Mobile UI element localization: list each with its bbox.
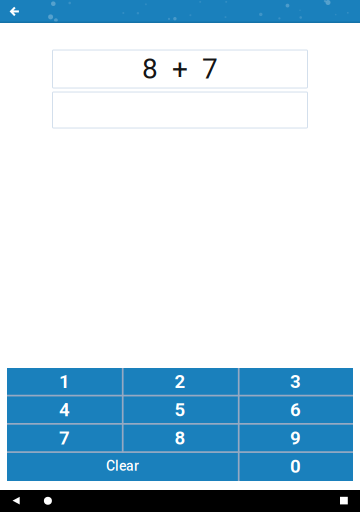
button[interactable]: 2 [122, 368, 238, 396]
staticText: 1 [59, 371, 70, 393]
staticText: 6 [290, 399, 301, 421]
staticText: 8 + 7 [142, 53, 218, 85]
staticText: 5 [174, 399, 185, 421]
staticText: 7 [59, 427, 70, 449]
button[interactable]: 3 [238, 368, 353, 396]
button[interactable]: 5 [122, 396, 238, 424]
staticText: 0 [290, 455, 301, 477]
staticText: 2 [174, 371, 185, 393]
button[interactable]: 1 [7, 368, 122, 396]
staticText: Clear [106, 458, 139, 474]
button[interactable]: Home [36, 490, 72, 512]
button[interactable]: 8 [122, 424, 238, 453]
staticText: 9 [290, 427, 301, 449]
button[interactable]: Back [0, 0, 32, 23]
button[interactable]: 0 [238, 453, 353, 481]
button[interactable]: 4 [7, 396, 122, 424]
button[interactable]: Back [0, 490, 36, 512]
staticText: 4 [59, 399, 70, 421]
button[interactable]: Recents [324, 490, 360, 512]
button[interactable]: 6 [238, 396, 353, 424]
button[interactable]: Clear [7, 453, 238, 481]
staticText: 8 [174, 427, 185, 449]
button[interactable]: 7 [7, 424, 122, 453]
button[interactable]: 9 [238, 424, 353, 453]
staticText: 3 [290, 371, 301, 393]
